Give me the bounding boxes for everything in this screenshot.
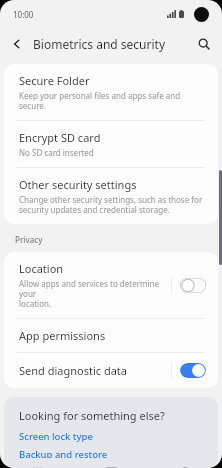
button[interactable]: Search — [192, 32, 216, 56]
staticText: Screen lock type — [19, 430, 93, 443]
staticText: Encrypt SD card — [19, 130, 101, 145]
staticText: Change other security settings, such as … — [19, 194, 203, 215]
button[interactable]: Encrypt SD card — [4, 121, 218, 167]
staticText: Biometrics and security — [33, 36, 166, 52]
staticText: Other security settings — [19, 177, 137, 192]
button[interactable]: Backup and restore — [19, 448, 108, 458]
button[interactable]: Send diagnostic data — [180, 363, 206, 378]
staticText: 10:00 — [13, 9, 34, 20]
staticText: No SD card inserted — [19, 147, 94, 158]
staticText: Privacy — [15, 234, 43, 245]
staticText: App permissions — [19, 328, 106, 343]
button[interactable]: App permissions — [4, 319, 218, 352]
staticText: Looking for something else? — [19, 408, 165, 423]
button[interactable]: Location — [180, 278, 206, 293]
staticText: Keep your personal files and apps safe a… — [19, 90, 206, 111]
button[interactable]: Secure Folder — [4, 64, 218, 120]
button[interactable]: Back — [6, 33, 28, 55]
staticText: Backup and restore — [19, 448, 108, 458]
staticText: Allow apps and services to determine you… — [19, 278, 165, 309]
button[interactable]: Screen lock type — [19, 430, 93, 443]
staticText: Send diagnostic data — [19, 363, 127, 378]
staticText: Secure Folder — [19, 73, 90, 88]
staticText: Location — [19, 261, 64, 276]
button[interactable]: Location — [4, 252, 218, 318]
button[interactable]: Other security settings — [4, 168, 218, 224]
button[interactable]: Send diagnostic data — [4, 353, 218, 388]
